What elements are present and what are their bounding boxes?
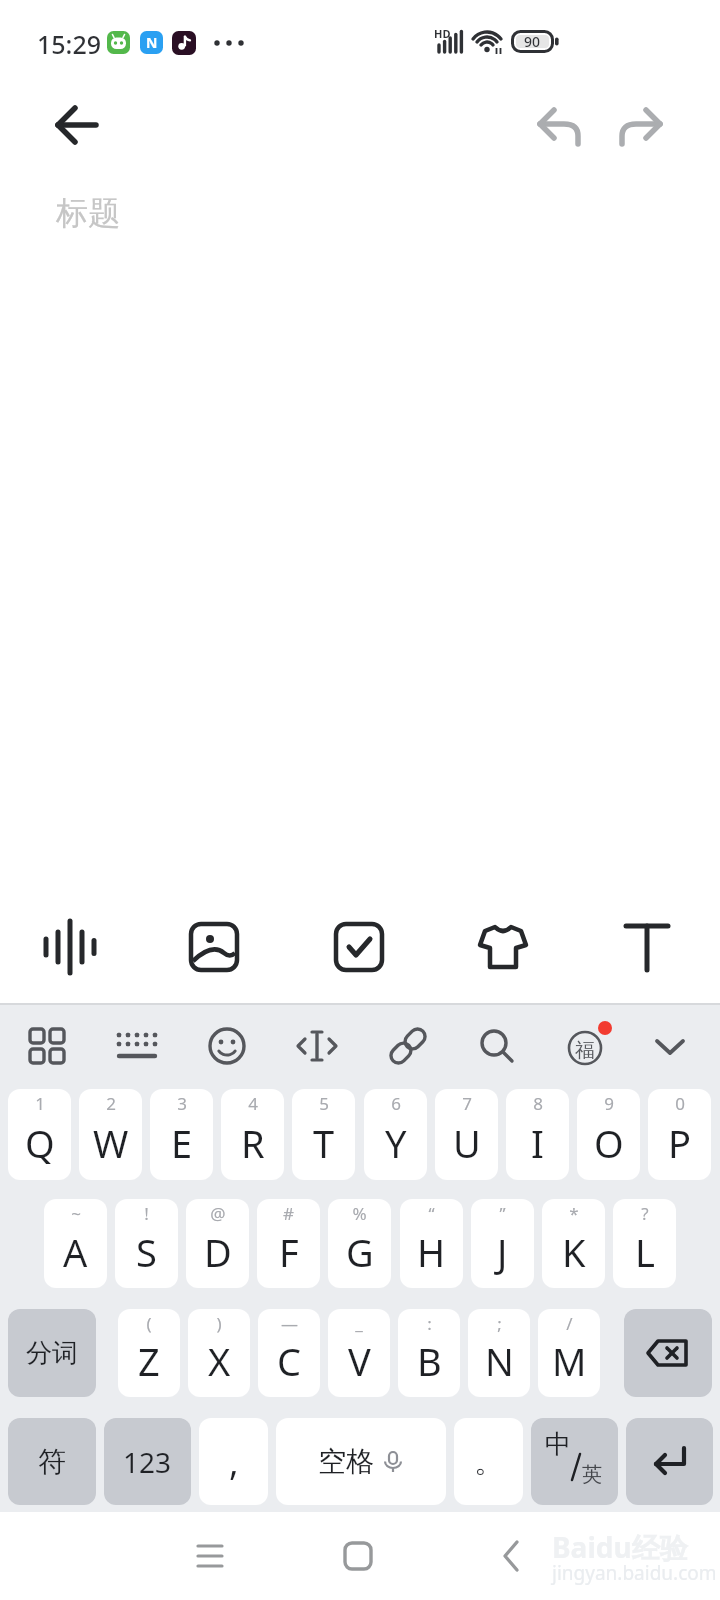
staticText: O — [594, 1117, 624, 1169]
button[interactable]: / — [538, 1309, 600, 1397]
staticText: 空格 — [318, 1444, 374, 1479]
button[interactable]: ) — [188, 1309, 250, 1397]
staticText: G — [346, 1226, 374, 1278]
staticText: / — [566, 1312, 573, 1335]
staticText: S — [136, 1226, 157, 1278]
staticText: @ — [210, 1202, 226, 1225]
button[interactable]: 6 — [364, 1089, 427, 1180]
staticText: T — [313, 1117, 335, 1169]
staticText: ! — [144, 1202, 149, 1225]
staticText: A — [63, 1226, 88, 1278]
button[interactable]: ; — [468, 1309, 530, 1397]
button[interactable]: ” — [471, 1199, 534, 1288]
button[interactable]: 分词 — [8, 1309, 96, 1397]
button[interactable]: 空格 — [276, 1418, 446, 1505]
button[interactable] — [327, 915, 391, 979]
button[interactable]: 2 — [79, 1089, 142, 1180]
staticText: 。 — [474, 1443, 504, 1481]
staticText: J — [497, 1226, 508, 1278]
staticText: X — [208, 1335, 231, 1387]
button[interactable]: 。 — [454, 1418, 523, 1505]
button[interactable] — [186, 1532, 234, 1580]
staticText: ( — [146, 1312, 152, 1335]
staticText: 123 — [123, 1443, 172, 1481]
staticText: ) — [216, 1312, 222, 1335]
button[interactable] — [643, 1019, 697, 1073]
button[interactable] — [290, 1019, 344, 1073]
button[interactable]: # — [257, 1199, 320, 1288]
button[interactable] — [334, 1532, 382, 1580]
staticText: HD — [434, 26, 451, 41]
button[interactable]: 4 — [221, 1089, 284, 1180]
staticText: V — [348, 1335, 371, 1387]
button[interactable] — [470, 1019, 524, 1073]
button[interactable] — [530, 100, 584, 154]
button[interactable] — [38, 915, 102, 979]
button[interactable] — [471, 915, 535, 979]
button[interactable] — [20, 1019, 74, 1073]
staticText: 15:29 — [37, 27, 102, 61]
button[interactable] — [182, 915, 246, 979]
staticText: 90 — [524, 32, 541, 51]
staticText: jingyan.baidu.com — [552, 1560, 717, 1586]
staticText: N — [485, 1335, 514, 1387]
staticText: E — [171, 1117, 193, 1169]
staticText: R — [241, 1117, 265, 1169]
button[interactable]: 1 — [8, 1089, 71, 1180]
button[interactable]: 3 — [150, 1089, 213, 1180]
button[interactable]: 福 — [559, 1019, 613, 1073]
button[interactable]: — — [258, 1309, 320, 1397]
staticText: 标题 — [56, 193, 120, 233]
staticText: — — [281, 1312, 298, 1335]
button[interactable]: 符 — [8, 1418, 96, 1505]
button[interactable]: 7 — [435, 1089, 498, 1180]
staticText: % — [352, 1202, 367, 1225]
button[interactable] — [616, 100, 670, 154]
staticText: 1 — [35, 1092, 45, 1115]
button[interactable] — [48, 96, 106, 154]
staticText: 3 — [177, 1092, 187, 1115]
staticText: 福 — [575, 1038, 595, 1063]
button[interactable]: 中 — [531, 1418, 618, 1505]
button[interactable]: 123 — [104, 1418, 191, 1505]
button[interactable]: “ — [400, 1199, 463, 1288]
staticText: D — [204, 1226, 232, 1278]
staticText: ? — [641, 1202, 649, 1225]
button[interactable]: 5 — [292, 1089, 355, 1180]
button[interactable]: _ — [328, 1309, 390, 1397]
button[interactable] — [110, 1019, 164, 1073]
button[interactable]: 9 — [577, 1089, 640, 1180]
button[interactable]: * — [542, 1199, 605, 1288]
button[interactable]: @ — [186, 1199, 249, 1288]
button[interactable]: ~ — [44, 1199, 107, 1288]
button[interactable] — [200, 1019, 254, 1073]
staticText: K — [562, 1226, 586, 1278]
button[interactable]: ! — [115, 1199, 178, 1288]
staticText: _ — [355, 1312, 363, 1335]
button[interactable] — [381, 1019, 435, 1073]
staticText: 4 — [248, 1092, 258, 1115]
staticText: 8 — [533, 1092, 543, 1115]
staticText: 0 — [675, 1092, 685, 1115]
button[interactable]: 0 — [648, 1089, 711, 1180]
button[interactable] — [488, 1532, 536, 1580]
button[interactable] — [624, 1309, 712, 1397]
button[interactable] — [615, 915, 679, 979]
staticText: 6 — [391, 1092, 401, 1115]
button[interactable]: : — [398, 1309, 460, 1397]
button[interactable]: ? — [613, 1199, 676, 1288]
staticText: M — [552, 1335, 587, 1387]
staticText: , — [229, 1437, 239, 1486]
staticText: ~ — [71, 1202, 81, 1225]
button[interactable]: ( — [118, 1309, 180, 1397]
button[interactable] — [626, 1418, 713, 1505]
staticText: C — [277, 1335, 302, 1387]
staticText: “ — [428, 1202, 435, 1225]
button[interactable]: , — [199, 1418, 268, 1505]
button[interactable]: 8 — [506, 1089, 569, 1180]
staticText: 英 — [582, 1462, 602, 1487]
staticText: * — [569, 1202, 579, 1225]
staticText: Z — [138, 1335, 160, 1387]
staticText: 2 — [106, 1092, 116, 1115]
button[interactable]: % — [328, 1199, 391, 1288]
